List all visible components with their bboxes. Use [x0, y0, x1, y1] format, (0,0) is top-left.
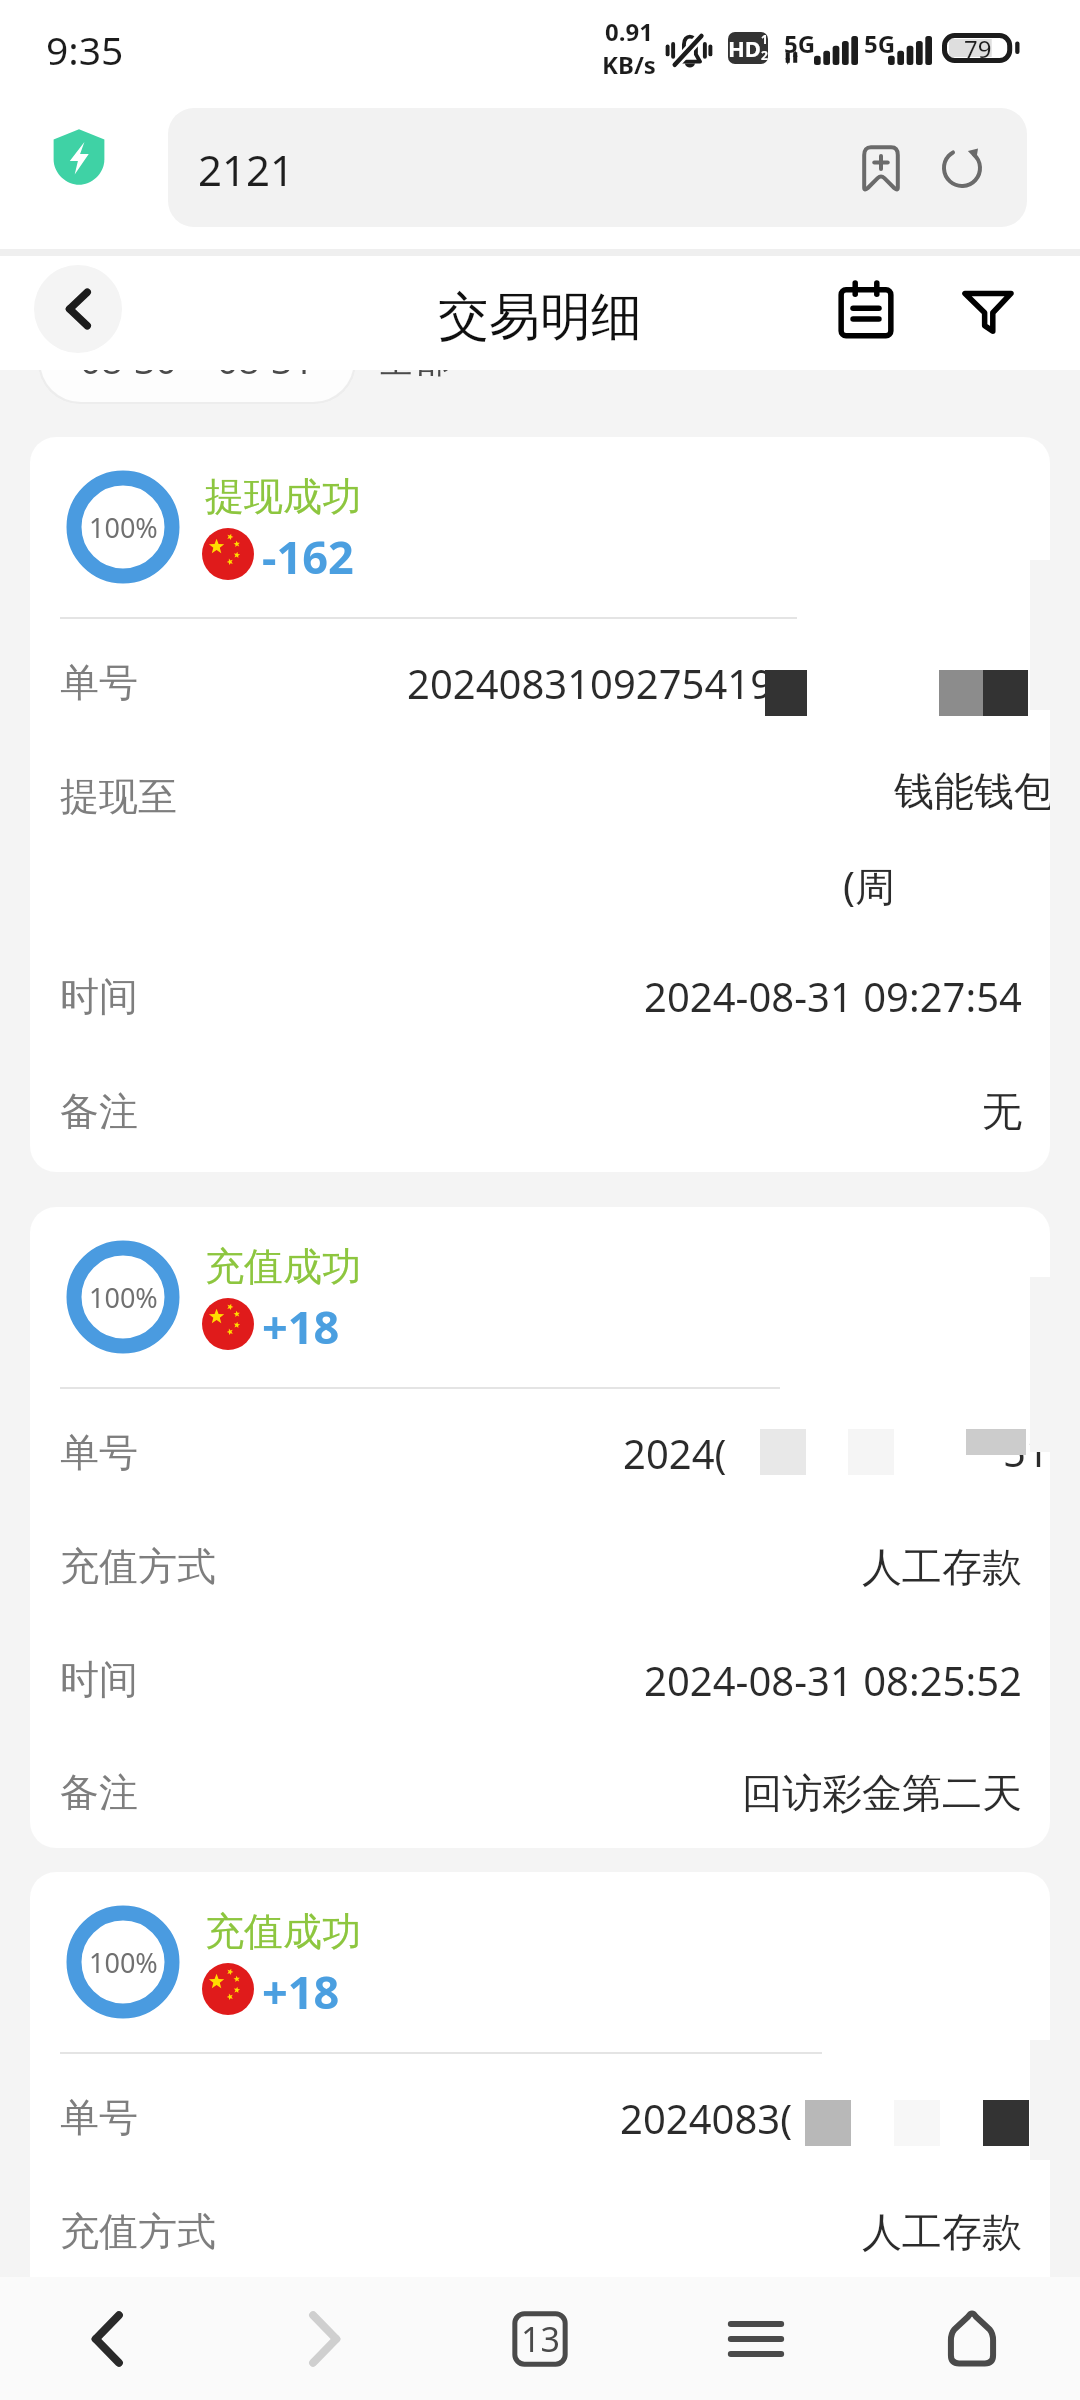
staticText: 2024( — [623, 1426, 727, 1480]
staticText: 时间 — [60, 972, 138, 1021]
staticText: 交易明细 — [438, 285, 642, 349]
button[interactable]: 100% — [30, 437, 1050, 1172]
staticText: 钱能钱包 — [894, 766, 1050, 816]
staticText: 9:35 — [46, 23, 124, 76]
staticText: (周 — [843, 858, 895, 913]
staticText: 充值方式 — [60, 1542, 216, 1591]
staticText: 100% — [89, 1279, 158, 1316]
staticText: 充值成功 — [205, 1242, 361, 1291]
staticText: 2024-08-31 08:25:52 — [644, 1653, 1022, 1707]
staticText: -162 — [262, 526, 354, 582]
button[interactable]: Tabs — [432, 2277, 648, 2400]
staticText: 2 — [761, 47, 768, 63]
staticText: 备注 — [60, 1087, 138, 1136]
staticText: 2024-08-31 09:27:54 — [644, 969, 1022, 1023]
staticText: 51 — [1003, 1424, 1049, 1478]
staticText: 单号 — [60, 658, 138, 707]
staticText: 0.91 — [605, 15, 653, 48]
staticText: 5G — [864, 27, 896, 60]
staticText: 1 — [761, 31, 768, 47]
staticText: 79 — [964, 32, 992, 62]
button[interactable]: 100% — [30, 1207, 1050, 1848]
staticText: 提现至 — [60, 772, 177, 821]
staticText: 5G — [784, 27, 816, 60]
button[interactable]: Refresh — [933, 139, 991, 197]
staticText: 100% — [89, 1944, 158, 1981]
button[interactable]: Home — [864, 2277, 1080, 2400]
button[interactable]: Bookmark — [852, 139, 910, 197]
staticText: 2024083( — [620, 2091, 793, 2145]
staticText: 无 — [982, 1086, 1022, 1136]
staticText: 2121 — [198, 141, 295, 198]
button[interactable]: 2121 — [168, 108, 1027, 227]
staticText: 时间 — [60, 1655, 138, 1704]
button[interactable]: 全部 — [378, 318, 452, 404]
staticText: +18 — [262, 1961, 340, 2017]
staticText: 20240831092754190 — [407, 656, 796, 710]
staticText: +18 — [262, 1296, 340, 1352]
staticText: 人工存款 — [862, 1542, 1022, 1592]
staticText: 08-30 ~ 08-31 — [80, 334, 314, 384]
button[interactable]: Filter — [940, 262, 1036, 358]
staticText: 备注 — [60, 1768, 138, 1817]
button[interactable]: Menu — [648, 2277, 864, 2400]
staticText: 充值方式 — [60, 2207, 216, 2256]
staticText: 提现成功 — [205, 472, 361, 521]
staticText: 100% — [89, 509, 158, 546]
button[interactable]: Security — [50, 126, 108, 188]
button[interactable]: Back — [0, 2277, 216, 2400]
button[interactable]: 08-30 ~ 08-31 — [40, 320, 354, 402]
staticText: HD — [728, 33, 761, 63]
staticText: 全部 — [378, 336, 452, 383]
staticText: 回访彩金第二天 — [742, 1768, 1022, 1818]
staticText: 13 — [521, 2316, 560, 2362]
staticText: 充值成功 — [205, 1907, 361, 1956]
button[interactable]: Forward — [216, 2277, 432, 2400]
staticText: 单号 — [60, 2093, 138, 2142]
button[interactable]: Back — [34, 265, 122, 353]
button[interactable]: Notes — [818, 262, 914, 358]
staticText: 单号 — [60, 1428, 138, 1477]
staticText: 人工存款 — [862, 2207, 1022, 2257]
staticText: KB/s — [602, 48, 656, 81]
button[interactable]: 100% — [30, 1872, 1050, 2277]
